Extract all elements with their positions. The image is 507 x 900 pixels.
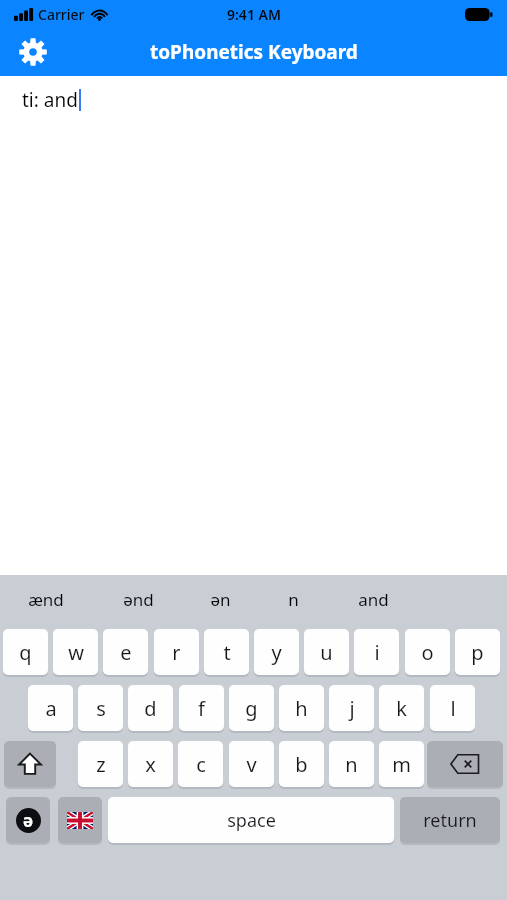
button[interactable]: n: [253, 575, 333, 623]
staticText: n: [345, 751, 358, 778]
button[interactable]: x: [128, 741, 173, 787]
staticText: ti: and: [22, 87, 78, 113]
staticText: ə: [23, 809, 34, 832]
staticText: k: [396, 695, 407, 722]
staticText: m: [392, 751, 411, 778]
staticText: c: [196, 751, 206, 778]
staticText: w: [68, 639, 84, 666]
button[interactable]: w: [53, 629, 98, 675]
button[interactable]: a: [28, 685, 73, 731]
button[interactable]: q: [3, 629, 48, 675]
staticText: space: [227, 808, 276, 833]
button[interactable]: y: [254, 629, 299, 675]
button[interactable]: Backspace: [427, 741, 503, 787]
button[interactable]: k: [379, 685, 424, 731]
button[interactable]: r: [154, 629, 199, 675]
button[interactable]: z: [78, 741, 123, 787]
staticText: s: [96, 695, 106, 722]
button[interactable]: ænd: [6, 575, 86, 623]
button[interactable]: p: [455, 629, 500, 675]
button[interactable]: g: [229, 685, 274, 731]
button[interactable]: i: [354, 629, 399, 675]
staticText: b: [295, 751, 308, 778]
button[interactable]: ənd: [98, 575, 178, 623]
staticText: ənd: [123, 588, 154, 611]
staticText: 9:41 AM: [227, 5, 281, 24]
staticText: r: [172, 639, 181, 666]
button[interactable]: ən: [180, 575, 260, 623]
button[interactable]: f: [179, 685, 224, 731]
staticText: v: [246, 751, 257, 778]
button[interactable]: l: [430, 685, 475, 731]
button[interactable]: t: [204, 629, 249, 675]
button[interactable]: c: [178, 741, 223, 787]
button[interactable]: d: [128, 685, 173, 731]
button[interactable]: b: [279, 741, 324, 787]
staticText: toPhonetics Keyboard: [150, 39, 358, 65]
button[interactable]: o: [405, 629, 450, 675]
staticText: h: [295, 695, 308, 722]
staticText: i: [374, 639, 380, 666]
staticText: Carrier: [38, 5, 85, 24]
staticText: q: [19, 639, 32, 666]
staticText: l: [450, 695, 456, 722]
staticText: ən: [210, 588, 231, 611]
button[interactable]: m: [379, 741, 424, 787]
button[interactable]: Settings: [16, 35, 50, 69]
staticText: a: [45, 695, 57, 722]
staticText: g: [245, 695, 258, 722]
staticText: e: [120, 639, 132, 666]
staticText: return: [423, 808, 477, 833]
button[interactable]: and: [333, 575, 413, 623]
button[interactable]: Language: [58, 797, 102, 843]
button[interactable]: n: [329, 741, 374, 787]
staticText: z: [96, 751, 106, 778]
button[interactable]: Shift: [4, 741, 56, 787]
staticText: n: [288, 588, 299, 611]
button[interactable]: e: [103, 629, 148, 675]
staticText: ænd: [28, 588, 64, 611]
button[interactable]: Phonetic mode: [6, 797, 50, 843]
staticText: y: [271, 639, 282, 666]
staticText: u: [320, 639, 333, 666]
staticText: and: [358, 588, 389, 611]
staticText: d: [144, 695, 157, 722]
staticText: f: [198, 695, 205, 722]
button[interactable]: return: [400, 797, 500, 843]
button[interactable]: j: [329, 685, 374, 731]
staticText: x: [145, 751, 156, 778]
button[interactable]: s: [78, 685, 123, 731]
button[interactable]: u: [304, 629, 349, 675]
staticText: t: [223, 639, 231, 666]
staticText: o: [421, 639, 434, 666]
button[interactable]: h: [279, 685, 324, 731]
staticText: j: [349, 695, 355, 722]
button[interactable]: v: [229, 741, 274, 787]
button[interactable]: space: [108, 797, 394, 843]
staticText: p: [471, 639, 484, 666]
